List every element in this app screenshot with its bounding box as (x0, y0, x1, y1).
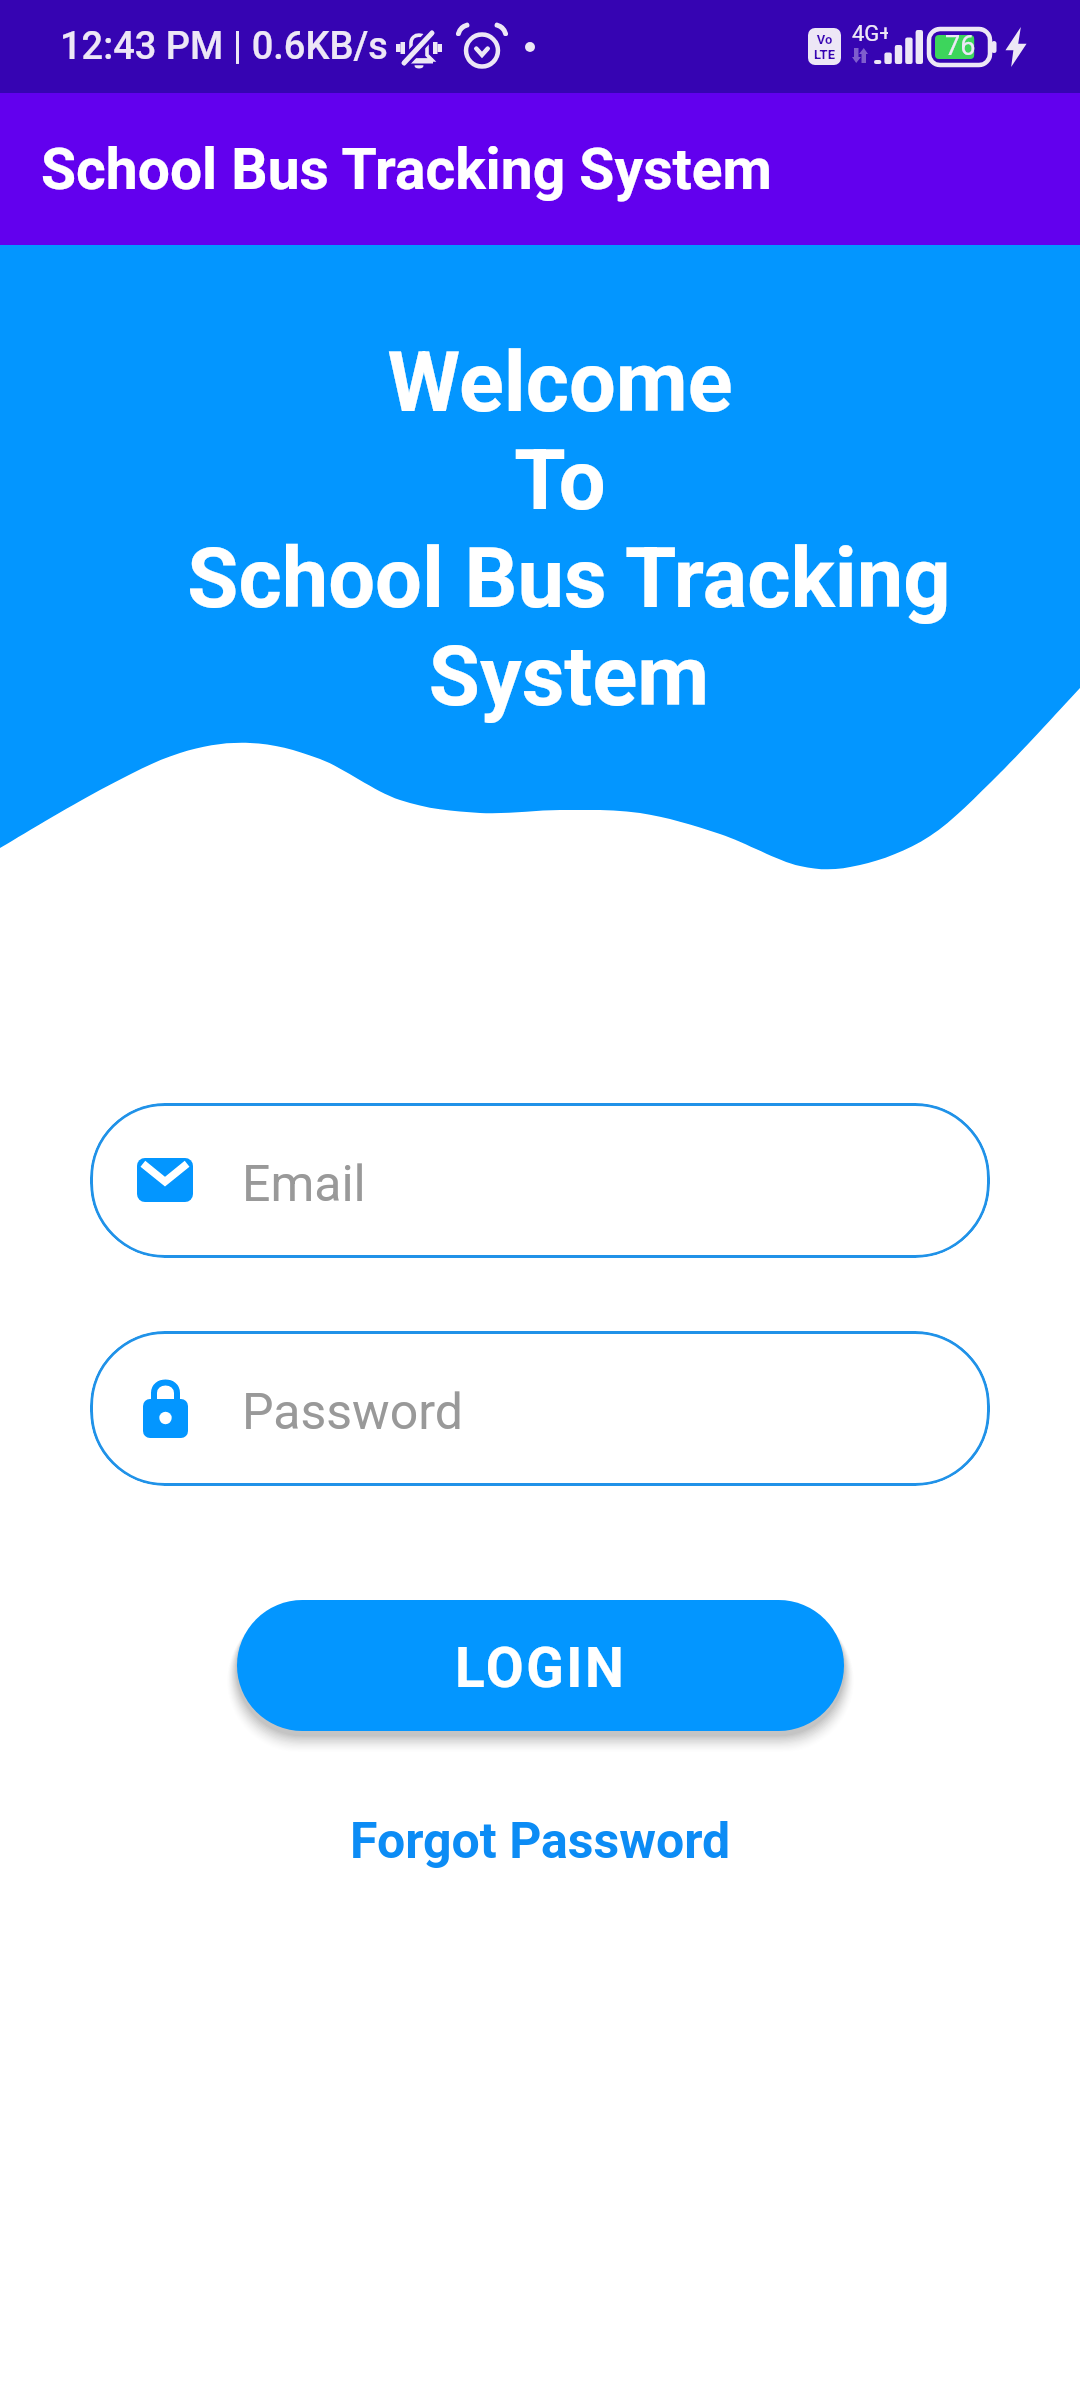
staticText: School Bus Tracking System (41, 136, 772, 203)
staticText: 12:43 PM | 0.6KB/s (60, 24, 388, 69)
staticText: Password (242, 1383, 463, 1442)
other: Password (143, 1378, 188, 1438)
staticText: 76 (945, 30, 976, 62)
staticText: LOGIN (455, 1636, 627, 1700)
other: Alarm set (461, 25, 503, 69)
button[interactable]: Forgot Password (330, 1802, 751, 1881)
staticText: Forgot Password (350, 1812, 731, 1871)
staticText: 4G+ (852, 21, 888, 47)
staticText: School Bus Tracking System (58, 530, 1080, 725)
other: Silent mode (394, 22, 444, 72)
other: Email (137, 1152, 193, 1208)
staticText: Email (242, 1155, 366, 1214)
button[interactable]: Email (90, 1103, 990, 1258)
button[interactable]: LOGIN (237, 1600, 844, 1731)
staticText: Welcome To (40, 334, 1080, 529)
staticText: Vo LTE (814, 32, 835, 62)
button[interactable]: Password (90, 1331, 990, 1486)
